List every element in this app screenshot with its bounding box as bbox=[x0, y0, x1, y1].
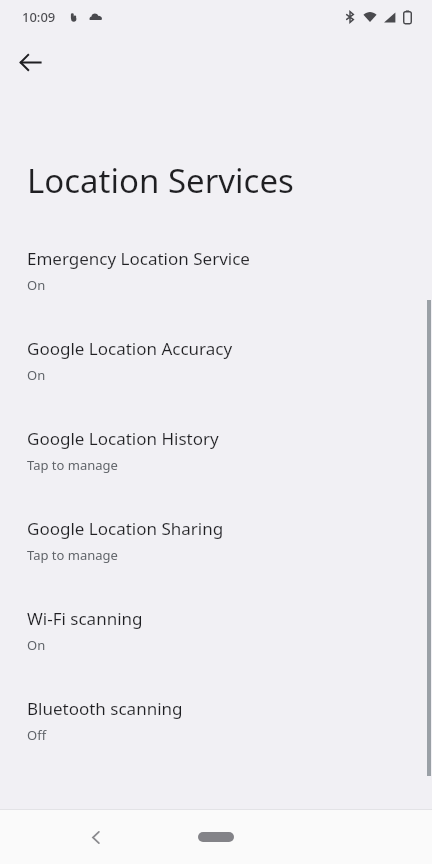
staticText: Off bbox=[27, 726, 47, 744]
button[interactable]: Wi-Fi scanning bbox=[0, 597, 432, 687]
button[interactable]: Back bbox=[76, 817, 116, 857]
staticText: 10:09 bbox=[22, 8, 56, 26]
button[interactable]: Emergency Location Service bbox=[0, 237, 432, 327]
button[interactable]: Bluetooth scanning bbox=[0, 687, 432, 777]
staticText: On bbox=[27, 366, 46, 384]
staticText: Bluetooth scanning bbox=[27, 697, 183, 720]
staticText: Google Location Sharing bbox=[27, 517, 224, 540]
staticText: Google Location History bbox=[27, 427, 219, 450]
staticText: Location Services bbox=[27, 158, 294, 203]
button[interactable]: Back bbox=[10, 42, 50, 82]
button[interactable]: Google Location Sharing bbox=[0, 507, 432, 597]
button[interactable]: Google Location Accuracy bbox=[0, 327, 432, 417]
staticText: Emergency Location Service bbox=[27, 247, 250, 270]
staticText: On bbox=[27, 276, 46, 294]
staticText: Google Location Accuracy bbox=[27, 337, 233, 360]
staticText: Tap to manage bbox=[27, 546, 118, 564]
button[interactable]: Home bbox=[188, 825, 244, 849]
button[interactable]: Google Location History bbox=[0, 417, 432, 507]
staticText: Tap to manage bbox=[27, 456, 118, 474]
staticText: Wi-Fi scanning bbox=[27, 607, 143, 630]
staticText: On bbox=[27, 636, 46, 654]
